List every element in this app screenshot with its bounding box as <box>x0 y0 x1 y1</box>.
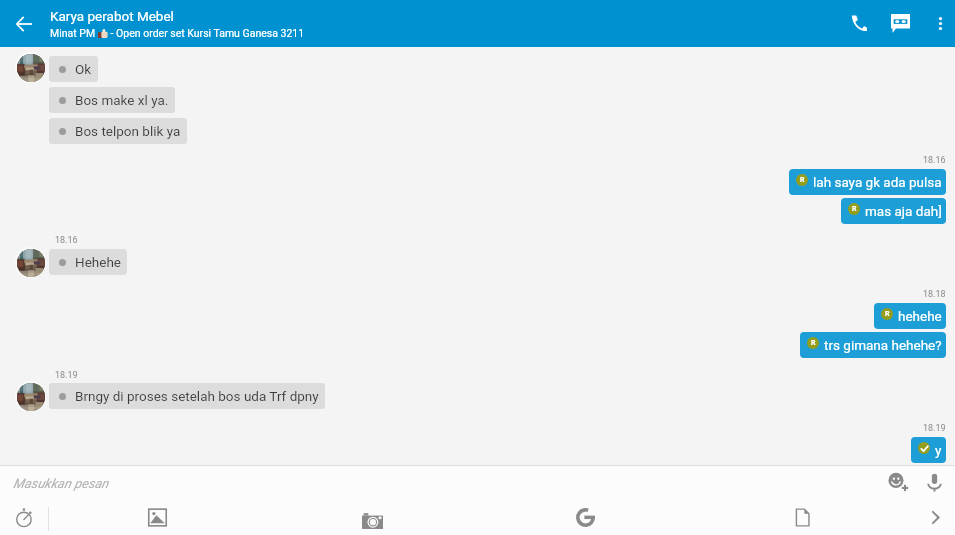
staticText: 18.16 <box>923 155 946 166</box>
staticText: Brngy di proses setelah bos uda Trf dpny <box>75 388 319 404</box>
button[interactable]: More <box>918 500 952 534</box>
button[interactable]: Back <box>8 8 40 40</box>
button[interactable]: Camera <box>355 503 389 535</box>
button[interactable]: More options <box>924 7 955 39</box>
button[interactable]: Bos make xl ya. <box>49 87 175 113</box>
button[interactable]: Contact avatar <box>15 52 46 83</box>
button[interactable]: Contact avatar <box>15 381 46 412</box>
button[interactable]: Timed message <box>7 500 41 534</box>
staticText: lah saya gk ada pulsa <box>813 174 942 190</box>
staticText: hehehe <box>898 308 942 324</box>
button[interactable]: Brngy di proses setelah bos uda Trf dpny <box>49 383 325 409</box>
button[interactable]: Google search <box>568 500 602 534</box>
button[interactable]: R <box>841 198 946 224</box>
button[interactable]: Private chat <box>884 7 916 39</box>
staticText: Karya perabot Mebel <box>50 8 174 24</box>
button[interactable]: Bos telpon blik ya <box>49 118 187 144</box>
staticText: Minat PM <box>50 27 98 39</box>
staticText: R <box>852 205 857 213</box>
button[interactable]: Contact avatar <box>15 247 46 278</box>
button[interactable]: Voice message <box>920 468 949 497</box>
button[interactable]: Hehehe <box>49 249 127 275</box>
staticText: R <box>885 310 890 318</box>
button[interactable]: R <box>800 332 946 358</box>
staticText: trs gimana hehehe? <box>824 337 942 353</box>
button[interactable]: R <box>874 303 946 329</box>
staticText: y <box>935 442 942 458</box>
staticText: 18.19 <box>55 370 78 381</box>
staticText: 18.18 <box>923 289 946 300</box>
button[interactable]: Add emoticon <box>884 468 913 497</box>
button[interactable]: Ok <box>49 56 98 82</box>
staticText: mas aja dah] <box>865 203 942 219</box>
staticText: Bos make xl ya. <box>75 92 169 108</box>
button[interactable]: Masukkan pesan <box>0 466 880 496</box>
staticText: Masukkan pesan <box>13 476 109 491</box>
button[interactable]: Call <box>843 7 875 39</box>
staticText: R <box>800 176 805 184</box>
staticText: 18.19 <box>923 423 946 434</box>
staticText: R <box>811 339 816 347</box>
button[interactable]: Send picture <box>140 500 174 534</box>
staticText: 18.16 <box>55 235 78 246</box>
button[interactable]: R <box>789 169 946 195</box>
button[interactable]: Send file <box>785 500 819 534</box>
staticText: - Open order set Kursi Tamu Ganesa 3211 <box>108 27 305 39</box>
staticText: Bos telpon blik ya <box>75 123 181 139</box>
staticText: Ok <box>75 61 92 77</box>
staticText: Hehehe <box>75 254 121 270</box>
button[interactable]: y <box>911 437 946 463</box>
